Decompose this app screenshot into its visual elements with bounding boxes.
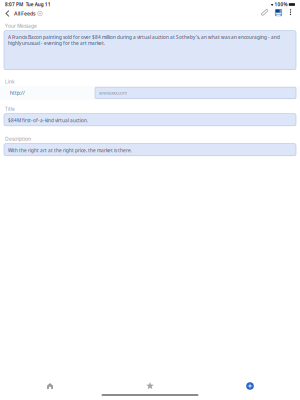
staticText: $84M first-of-a-kind virtual auction.: [8, 117, 88, 123]
button[interactable]: Save: [272, 9, 285, 18]
button[interactable]: Favorites: [125, 382, 175, 390]
staticText: A Francis Bacon painting sold for over $…: [8, 34, 280, 46]
staticText: www.xxx.com: [99, 90, 127, 96]
button[interactable]: All Feeds: [14, 9, 45, 18]
button[interactable]: More options: [285, 9, 296, 18]
staticText: Tue Aug 11: [26, 1, 51, 8]
staticText: With the right art at the right price, t…: [8, 147, 132, 153]
button[interactable]: Assistant: [225, 382, 275, 390]
staticText: Description: [5, 135, 31, 142]
staticText: 8:07 PM: [5, 1, 23, 8]
staticText: All Feeds: [14, 10, 36, 17]
staticText: 100%: [275, 1, 288, 8]
staticText: Link: [5, 78, 15, 85]
staticText: http://: [10, 90, 25, 96]
staticText: Title: [5, 105, 15, 112]
button[interactable]: Attach: [258, 9, 272, 18]
button[interactable]: Home: [25, 382, 75, 390]
staticText: Your Message: [5, 22, 37, 29]
button[interactable]: Back: [1, 9, 14, 18]
